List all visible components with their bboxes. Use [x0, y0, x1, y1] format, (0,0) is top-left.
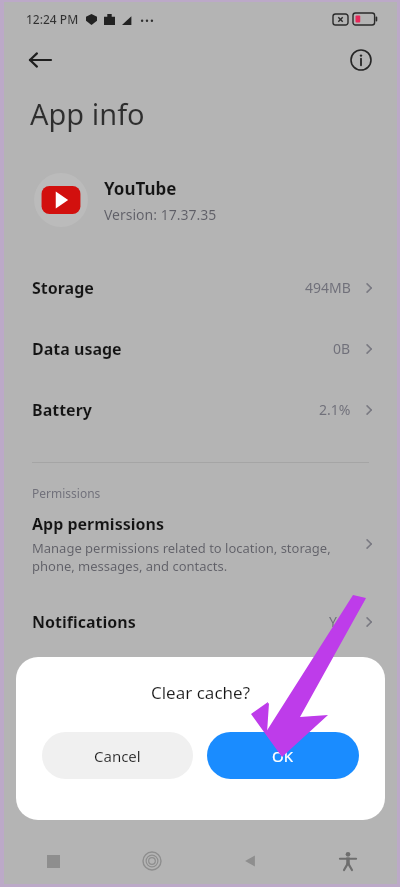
staticText: 2.1% — [319, 400, 351, 419]
button[interactable]: OK — [207, 732, 359, 779]
button[interactable]: Back — [18, 38, 62, 82]
staticText: Battery — [32, 399, 92, 421]
button[interactable]: Notifications — [4, 591, 397, 652]
staticText: OK — [272, 746, 294, 766]
staticText: App permissions — [32, 513, 164, 535]
staticText: App info — [30, 94, 145, 133]
staticText: Manage permissions related to location, … — [32, 539, 331, 575]
button[interactable]: Data usage — [4, 318, 397, 379]
staticText: Clear cache? — [16, 681, 385, 704]
button[interactable]: App details — [339, 38, 383, 82]
button[interactable]: Battery — [4, 379, 397, 440]
staticText: Permissions — [32, 485, 101, 501]
staticText: Data usage — [32, 338, 122, 360]
button[interactable]: App permissions — [4, 509, 397, 579]
staticText: 494MB — [305, 278, 351, 297]
button[interactable]: Recents — [4, 838, 103, 884]
staticText: 12:24 PM — [26, 11, 79, 27]
staticText: Version: 17.37.35 — [104, 205, 217, 224]
button[interactable]: Cancel — [42, 732, 193, 779]
staticText: Notifications — [32, 611, 136, 633]
button[interactable]: Back — [201, 838, 299, 884]
staticText: YouTube — [104, 177, 177, 200]
staticText: 0B — [333, 339, 351, 358]
staticText: Yes — [329, 612, 351, 631]
staticText: Storage — [32, 277, 94, 299]
staticText: Cancel — [94, 746, 141, 766]
button[interactable]: Accessibility — [299, 838, 397, 884]
button[interactable]: Home — [103, 838, 201, 884]
button[interactable]: Storage — [4, 257, 397, 318]
